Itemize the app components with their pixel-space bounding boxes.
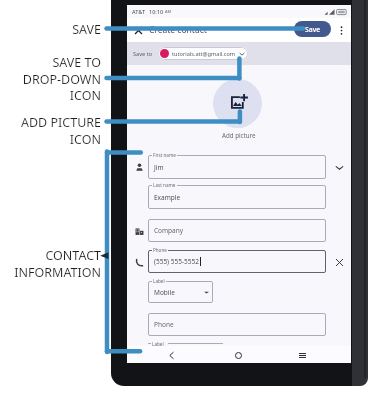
staticText: Save (305, 25, 321, 34)
staticText: 10:10 (149, 8, 164, 15)
button[interactable]: Home (231, 348, 245, 362)
staticText: SAVE (2, 21, 101, 38)
staticText: (555) 555-5552 (154, 257, 199, 266)
button[interactable]: Expand name fields (335, 163, 344, 172)
button[interactable]: Company (148, 219, 326, 242)
staticText: First name (153, 152, 176, 158)
staticText: Example (154, 193, 181, 202)
button[interactable]: Example (148, 185, 326, 209)
staticText: Mobile (154, 288, 175, 297)
button[interactable]: Close (131, 23, 145, 37)
staticText: Last name (153, 182, 176, 188)
button[interactable]: Recent apps (295, 348, 309, 362)
staticText: Save to (133, 50, 153, 58)
staticText: SAVE TO DROP-DOWN ICON (2, 54, 101, 103)
button[interactable]: Jim (148, 155, 326, 179)
button[interactable]: Back (164, 348, 178, 362)
button[interactable]: Mobile (148, 281, 213, 303)
staticText: Phone (154, 320, 174, 329)
staticText: Label (152, 341, 164, 347)
staticText: Phone (153, 247, 167, 253)
button[interactable]: Save (294, 21, 331, 37)
button[interactable]: tutorials.att@gmail.com (158, 47, 248, 60)
staticText: tutorials.att@gmail.com (172, 50, 236, 58)
button[interactable]: More options (335, 24, 348, 37)
button[interactable]: Add picture (213, 79, 262, 128)
button[interactable]: Clear phone number (334, 257, 345, 268)
staticText: Create contact (149, 24, 207, 36)
button[interactable]: Phone (148, 313, 326, 336)
staticText: Jim (154, 163, 164, 172)
staticText: ADD PICTURE ICON (2, 114, 101, 147)
staticText: Company (154, 226, 184, 235)
staticText: Label (153, 278, 165, 284)
staticText: CONTACT INFORMATION (2, 247, 101, 280)
staticText: AT&T (132, 8, 146, 15)
button[interactable]: (555) 555-5552 (148, 250, 326, 273)
staticText: AM (165, 9, 171, 14)
staticText: Add picture (222, 131, 256, 139)
